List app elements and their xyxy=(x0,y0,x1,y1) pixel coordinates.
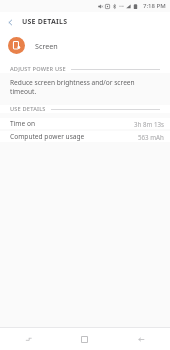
staticText: 7:18 PM xyxy=(143,2,166,10)
staticText: 3h 8m 13s xyxy=(134,120,164,128)
button[interactable]: Time on xyxy=(0,118,170,129)
button[interactable]: Computed power usage xyxy=(0,131,170,142)
staticText: 563 mAh xyxy=(138,133,164,141)
staticText: USE DETAILS xyxy=(22,17,68,27)
staticText: Screen xyxy=(35,41,58,51)
button[interactable]: Home xyxy=(56,328,113,350)
button[interactable]: Screen xyxy=(0,32,170,59)
staticText: Reduce screen brightness and/or screen t… xyxy=(10,78,160,96)
staticText: ADJUST POWER USE xyxy=(10,65,66,73)
staticText: USE DETAILS xyxy=(10,105,46,113)
staticText: Time on xyxy=(10,119,36,128)
staticText: Computed power usage xyxy=(10,132,85,141)
button[interactable]: Navigate up xyxy=(0,12,20,32)
button[interactable]: Back xyxy=(113,328,170,350)
button[interactable]: Recents xyxy=(0,328,56,350)
